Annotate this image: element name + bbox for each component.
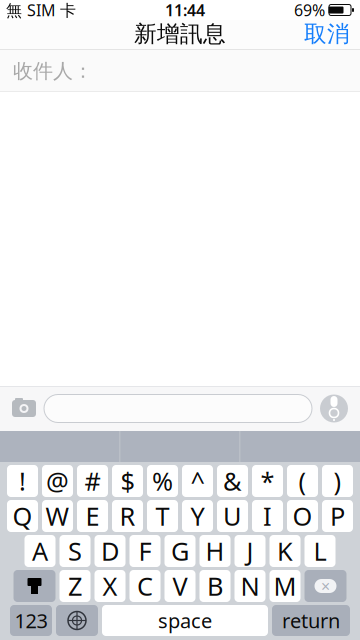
- button[interactable]: ): [322, 465, 353, 497]
- staticText: @: [46, 464, 69, 498]
- button[interactable]: Camera: [4, 386, 44, 430]
- button[interactable]: N: [234, 570, 265, 602]
- button[interactable]: ^: [182, 465, 213, 497]
- button[interactable]: #: [77, 465, 108, 497]
- staticText: O: [292, 499, 312, 533]
- staticText: 無 SIM 卡: [6, 0, 76, 21]
- button[interactable]: C: [129, 570, 160, 602]
- button[interactable]: F: [129, 535, 160, 567]
- button[interactable]: space: [102, 605, 268, 636]
- staticText: space: [158, 607, 212, 634]
- staticText: &: [223, 464, 242, 498]
- staticText: V: [172, 569, 187, 603]
- button[interactable]: E: [77, 500, 108, 532]
- button[interactable]: D: [94, 535, 125, 567]
- staticText: G: [171, 534, 189, 568]
- staticText: B: [207, 569, 223, 603]
- button[interactable]: Next keyboard: [56, 605, 98, 636]
- staticText: K: [277, 534, 293, 568]
- button[interactable]: Return: [272, 605, 350, 636]
- staticText: F: [138, 534, 151, 568]
- button[interactable]: 取消: [294, 20, 360, 48]
- button[interactable]: R: [112, 500, 143, 532]
- staticText: ^: [190, 464, 204, 498]
- staticText: $: [120, 464, 134, 498]
- button[interactable]: A: [24, 535, 55, 567]
- staticText: U: [223, 499, 242, 533]
- button[interactable]: J: [234, 535, 265, 567]
- staticText: J: [246, 534, 253, 568]
- button[interactable]: I: [252, 500, 283, 532]
- button[interactable]: T: [147, 500, 178, 532]
- button[interactable]: (: [287, 465, 318, 497]
- button[interactable]: Dictate: [312, 386, 356, 430]
- staticText: P: [330, 499, 345, 533]
- button[interactable]: Numbers: [10, 605, 52, 636]
- button[interactable]: !: [7, 465, 38, 497]
- staticText: C: [137, 569, 153, 603]
- staticText: D: [101, 534, 119, 568]
- button[interactable]: Z: [59, 570, 90, 602]
- staticText: 收件人：: [13, 59, 93, 83]
- button[interactable]: Y: [182, 500, 213, 532]
- staticText: ): [333, 464, 341, 498]
- button[interactable]: *: [252, 465, 283, 497]
- button[interactable]: L: [304, 535, 335, 567]
- staticText: R: [119, 499, 135, 533]
- staticText: *: [260, 464, 274, 498]
- button[interactable]: X: [94, 570, 125, 602]
- staticText: M: [273, 569, 296, 603]
- staticText: 11:44: [165, 0, 205, 21]
- staticText: Z: [68, 569, 82, 603]
- staticText: ×: [321, 575, 330, 597]
- button[interactable]: M: [269, 570, 300, 602]
- button[interactable]: Delete: [304, 570, 346, 602]
- button[interactable]: @: [42, 465, 73, 497]
- staticText: 123: [14, 607, 47, 634]
- button[interactable]: Q: [7, 500, 38, 532]
- staticText: %: [152, 464, 173, 498]
- button[interactable]: 收件人：: [0, 50, 360, 92]
- button[interactable]: &: [217, 465, 248, 497]
- staticText: 取消: [304, 20, 350, 48]
- button[interactable]: B: [199, 570, 230, 602]
- staticText: return: [282, 607, 340, 634]
- staticText: E: [85, 499, 99, 533]
- staticText: 新增訊息: [134, 20, 226, 48]
- staticText: A: [32, 534, 48, 568]
- button[interactable]: %: [147, 465, 178, 497]
- button[interactable]: V: [164, 570, 195, 602]
- staticText: N: [240, 569, 259, 603]
- button[interactable]: H: [199, 535, 230, 567]
- button[interactable]: O: [287, 500, 318, 532]
- staticText: Y: [190, 499, 204, 533]
- button[interactable]: K: [269, 535, 300, 567]
- button[interactable]: $: [112, 465, 143, 497]
- staticText: X: [102, 569, 117, 603]
- staticText: (: [298, 464, 306, 498]
- staticText: Q: [12, 499, 32, 533]
- staticText: #: [84, 464, 100, 498]
- button[interactable]: U: [217, 500, 248, 532]
- staticText: W: [45, 499, 69, 533]
- staticText: H: [205, 534, 224, 568]
- staticText: T: [155, 499, 169, 533]
- button[interactable]: G: [164, 535, 195, 567]
- button[interactable]: Shift: [13, 570, 55, 602]
- staticText: I: [263, 499, 272, 533]
- staticText: L: [313, 534, 326, 568]
- staticText: 69%: [294, 0, 325, 21]
- staticText: S: [68, 534, 82, 568]
- button[interactable]: S: [59, 535, 90, 567]
- staticText: !: [19, 464, 26, 498]
- button[interactable]: W: [42, 500, 73, 532]
- button[interactable]: P: [322, 500, 353, 532]
